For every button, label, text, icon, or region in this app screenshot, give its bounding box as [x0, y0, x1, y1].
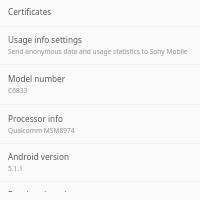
button[interactable]: Usage info settings	[0, 27, 200, 64]
staticText: Usage info settings	[8, 34, 82, 45]
staticText: 5.1.1	[8, 164, 23, 173]
button[interactable]: Processor info	[0, 105, 200, 143]
staticText: Certificates	[8, 6, 52, 17]
button[interactable]: Model number	[0, 65, 200, 104]
staticText: Android version	[8, 151, 69, 162]
staticText: Send anonymous data and usage statistics…	[8, 47, 188, 56]
button[interactable]: Baseband version	[0, 182, 200, 200]
staticText: Qualcomm MSM8974	[8, 126, 75, 135]
button[interactable]: Certificates	[0, 0, 200, 26]
staticText: Processor info	[8, 113, 63, 124]
staticText: Baseband version	[8, 189, 77, 192]
button[interactable]: Android version	[0, 144, 200, 181]
staticText: C6833	[8, 86, 28, 95]
staticText: Model number	[8, 73, 66, 84]
